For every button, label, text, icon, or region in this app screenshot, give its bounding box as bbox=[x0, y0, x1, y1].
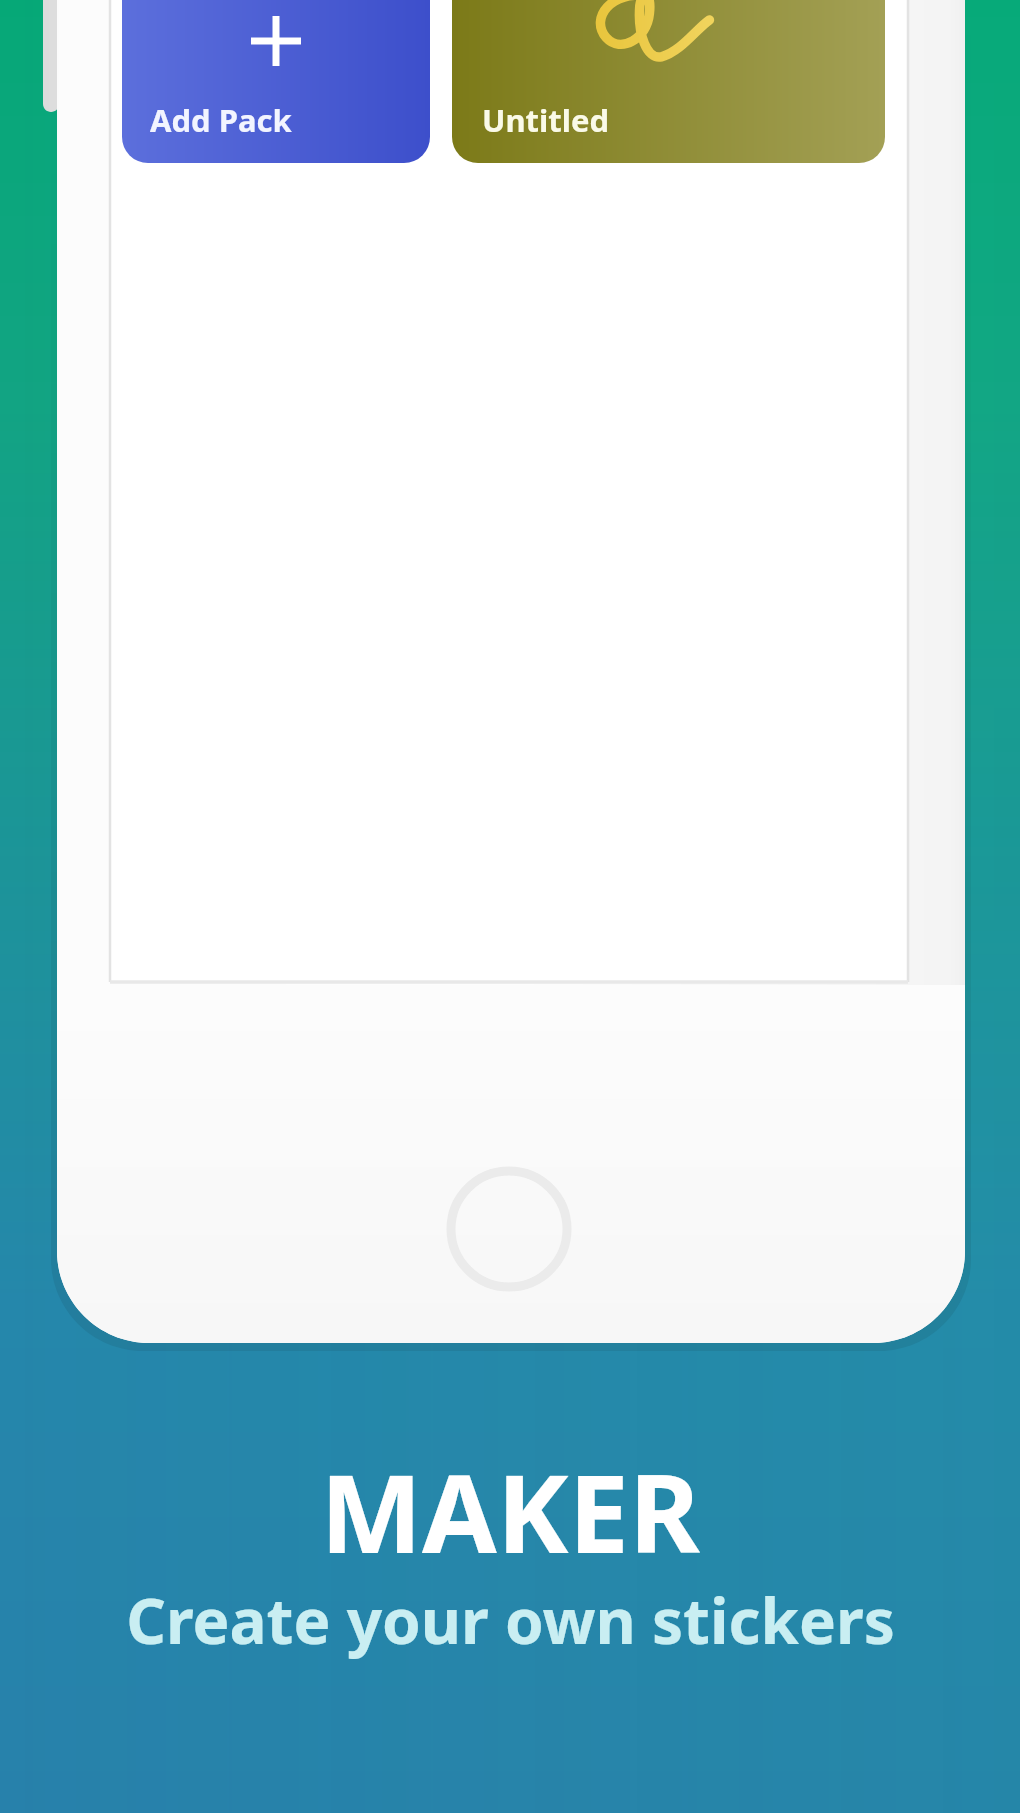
button[interactable]: Untitled bbox=[452, 0, 885, 163]
staticText: MAKER bbox=[320, 1438, 700, 1585]
staticText: Add Pack bbox=[150, 99, 292, 141]
staticText: Create your own stickers bbox=[126, 1578, 895, 1662]
button[interactable]: Add Pack bbox=[122, 0, 430, 163]
staticText: Untitled bbox=[482, 99, 610, 141]
